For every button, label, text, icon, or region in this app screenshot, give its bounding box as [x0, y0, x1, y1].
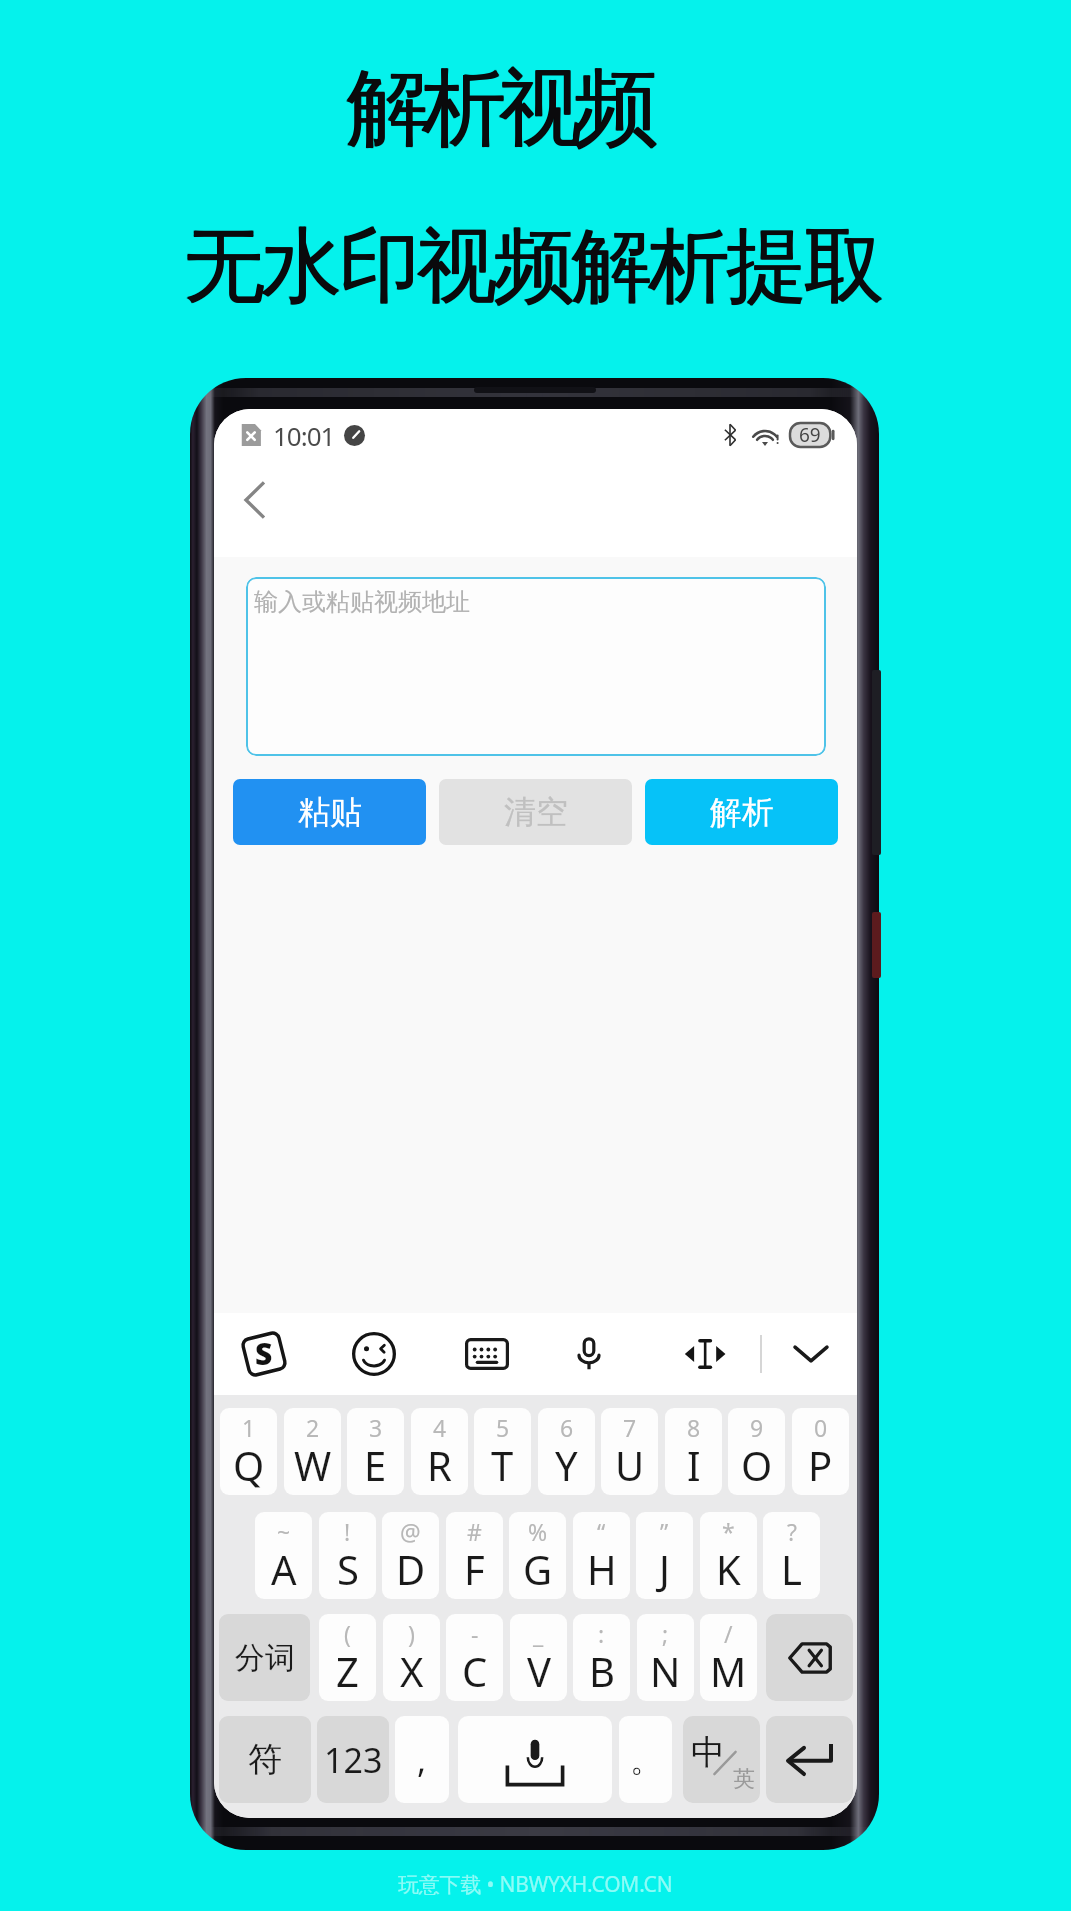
staticText: 6 [560, 1412, 574, 1443]
button[interactable]: 8 [665, 1408, 722, 1495]
button[interactable]: 符 [219, 1716, 311, 1803]
button[interactable]: ” [636, 1512, 693, 1599]
button[interactable]: 5 [474, 1408, 531, 1495]
button[interactable]: 粘贴 [233, 779, 426, 845]
button[interactable]: 6 [538, 1408, 595, 1495]
staticText: 7 [623, 1412, 637, 1443]
button[interactable]: 123 [317, 1716, 389, 1803]
staticText: ) [408, 1618, 415, 1649]
staticText: V [527, 1644, 551, 1698]
button[interactable]: % [509, 1512, 566, 1599]
staticText: 解析视频 [351, 55, 655, 161]
button[interactable]: Voice input [549, 1313, 629, 1395]
staticText: 9 [750, 1412, 764, 1443]
button[interactable]: Backspace [766, 1614, 853, 1701]
button[interactable]: Keyboard [447, 1313, 527, 1395]
staticText: J [659, 1542, 670, 1596]
button[interactable]: 分词 [219, 1614, 310, 1701]
staticText: P [808, 1438, 833, 1492]
staticText: K [716, 1542, 741, 1596]
staticText: U [615, 1438, 645, 1492]
staticText: ( [344, 1618, 351, 1649]
staticText: S [255, 1333, 273, 1374]
button[interactable]: Space [458, 1716, 612, 1803]
button[interactable]: Sogou [224, 1313, 304, 1395]
staticText: - [471, 1618, 479, 1649]
staticText: H [587, 1542, 617, 1596]
staticText: 8 [687, 1412, 701, 1443]
staticText: G [523, 1542, 553, 1596]
staticText: Q [233, 1438, 265, 1492]
staticText: @ [400, 1516, 421, 1547]
button[interactable]: 解析 [645, 779, 838, 845]
button[interactable]: 。 [619, 1716, 672, 1803]
button[interactable]: 3 [347, 1408, 404, 1495]
button[interactable]: Emoji [334, 1313, 414, 1395]
staticText: 无水印视频解析提取 [184, 215, 882, 317]
staticText: ! [344, 1516, 351, 1547]
button[interactable]: ? [763, 1512, 820, 1599]
button[interactable]: Move cursor [664, 1313, 744, 1395]
button[interactable]: : [573, 1614, 630, 1701]
staticText: 清空 [504, 792, 568, 832]
staticText: 5 [496, 1412, 510, 1443]
staticText: R [427, 1438, 452, 1492]
staticText: 2 [306, 1412, 320, 1443]
button[interactable]: ; [637, 1614, 694, 1701]
staticText: Z [336, 1644, 359, 1698]
staticText: 粘贴 [298, 792, 362, 832]
button[interactable]: ) [383, 1614, 440, 1701]
button[interactable]: 输入或粘贴视频地址 [246, 577, 826, 756]
button[interactable]: Hide keyboard [771, 1313, 851, 1395]
staticText: 。 [630, 1740, 662, 1780]
staticText: : [598, 1618, 605, 1649]
button[interactable]: # [446, 1512, 503, 1599]
staticText: T [491, 1438, 514, 1492]
button[interactable]: ~ [255, 1512, 312, 1599]
staticText: “ [597, 1516, 606, 1547]
button[interactable]: Switch Chinese English input [683, 1716, 760, 1803]
button[interactable]: / [700, 1614, 757, 1701]
button[interactable]: , [395, 1716, 449, 1803]
button[interactable]: _ [510, 1614, 567, 1701]
button[interactable]: 7 [601, 1408, 658, 1495]
staticText: 输入或粘贴视频地址 [254, 587, 470, 617]
button[interactable]: Enter [766, 1716, 853, 1803]
button[interactable]: * [700, 1512, 757, 1599]
staticText: F [464, 1542, 485, 1596]
staticText: 4 [433, 1412, 447, 1443]
staticText: # [467, 1516, 482, 1547]
button[interactable]: Back [222, 467, 288, 533]
button[interactable]: 2 [284, 1408, 341, 1495]
staticText: 英 [733, 1765, 755, 1793]
staticText: * [722, 1516, 735, 1547]
button[interactable]: - [446, 1614, 503, 1701]
staticText: C [462, 1644, 488, 1698]
button[interactable]: ! [319, 1512, 376, 1599]
staticText: 0 [814, 1412, 828, 1443]
staticText: 3 [369, 1412, 383, 1443]
button[interactable]: 4 [411, 1408, 468, 1495]
staticText: 中 [691, 1731, 725, 1774]
staticText: 无水印视频解析提取 [184, 216, 882, 318]
staticText: 玩意下载 • NBWYXH.COM.CN [398, 1870, 673, 1899]
button[interactable]: 0 [792, 1408, 849, 1495]
button[interactable]: 清空 [439, 779, 632, 845]
button[interactable]: 1 [220, 1408, 277, 1495]
staticText: 10:01 [273, 418, 335, 453]
staticText: I [687, 1438, 701, 1492]
staticText: 解析 [710, 792, 774, 832]
staticText: L [781, 1542, 802, 1596]
button[interactable]: “ [573, 1512, 630, 1599]
staticText: N [650, 1644, 681, 1698]
staticText: 分词 [235, 1639, 295, 1677]
staticText: 解析视频 [351, 56, 655, 162]
staticText: ” [660, 1516, 669, 1547]
button[interactable]: 9 [728, 1408, 785, 1495]
staticText: W [294, 1438, 332, 1492]
staticText: Y [555, 1438, 578, 1492]
staticText: / [724, 1618, 733, 1649]
staticText: 符 [248, 1738, 282, 1781]
button[interactable]: @ [382, 1512, 439, 1599]
button[interactable]: ( [319, 1614, 376, 1701]
